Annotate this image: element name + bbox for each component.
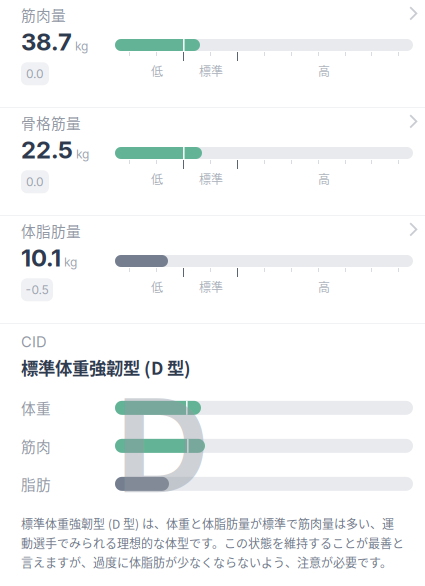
staticText: 標準 [199,62,223,79]
button[interactable]: 骨格筋量 [0,108,425,215]
staticText: 高 [318,62,330,79]
staticText: 筋肉量 [21,4,66,25]
staticText: 38.7 [21,27,72,56]
staticText: 標準 [199,278,223,295]
staticText: 標準体重強韌型 (D 型) [21,355,191,380]
staticText: 低 [151,170,163,187]
staticText: 高 [318,170,330,187]
staticText: kg [75,39,88,53]
staticText: 低 [151,278,163,295]
staticText: 体脂肪量 [21,220,81,241]
staticText: 標準体重強韌型 (D 型) は、体重と体脂肪量が標準で筋肉量は多い、運動選手でみ… [21,515,404,571]
staticText: 脂肪 [21,473,51,494]
staticText: 0.0 [26,174,44,189]
staticText: 体重 [21,397,51,418]
staticText: CID [21,333,47,351]
button[interactable]: 体脂肪量 [0,216,425,323]
staticText: 高 [318,278,330,295]
staticText: 骨格筋量 [21,112,81,133]
staticText: 10.1 [21,243,61,272]
staticText: 標準 [199,170,223,187]
button[interactable]: 筋肉量 [0,0,425,107]
staticText: 0.0 [26,66,44,81]
staticText: D [116,367,209,523]
staticText: 筋肉 [21,435,51,456]
staticText: kg [76,147,89,161]
staticText: 22.5 [21,135,73,164]
staticText: -0.5 [25,282,48,297]
staticText: 低 [151,62,163,79]
staticText: kg [64,255,77,269]
